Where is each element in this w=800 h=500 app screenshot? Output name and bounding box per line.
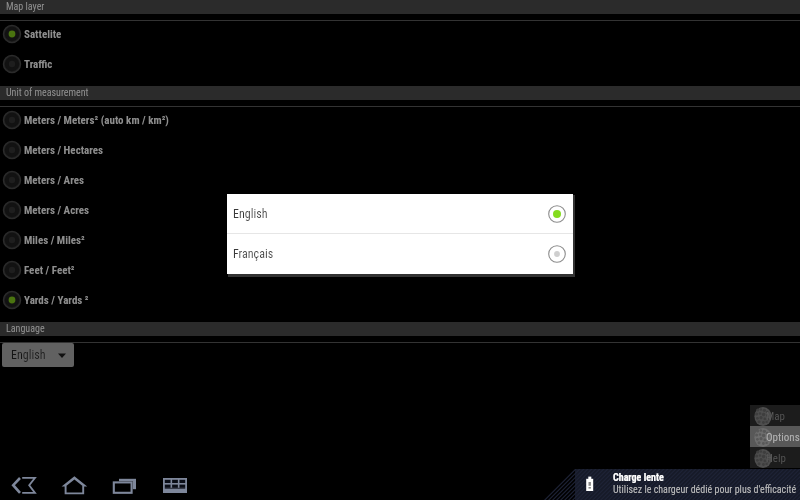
button[interactable]: Sattelite xyxy=(0,19,800,49)
button[interactable]: Meters / Hectares xyxy=(0,135,800,165)
staticText: Miles / Miles² xyxy=(24,234,85,247)
button[interactable]: Home xyxy=(50,470,100,500)
staticText: Charge lente xyxy=(613,472,664,484)
button[interactable]: Options xyxy=(750,426,800,447)
staticText: English xyxy=(233,207,540,221)
staticText: Language xyxy=(6,323,45,335)
staticText: Map xyxy=(766,410,786,423)
button[interactable]: Charge lente xyxy=(575,469,800,500)
button[interactable]: Traffic xyxy=(0,49,800,79)
staticText: Meters / Meters² (auto km / km²) xyxy=(24,114,169,127)
button[interactable]: Yards / Yards ² xyxy=(0,285,800,315)
button[interactable]: Keyboard xyxy=(150,470,200,500)
button[interactable]: Français xyxy=(227,234,573,273)
button[interactable]: Help xyxy=(750,447,800,468)
staticText: Feet / Feet² xyxy=(24,264,75,277)
button[interactable]: English xyxy=(227,194,573,233)
staticText: Map layer xyxy=(6,1,45,13)
button[interactable]: Feet / Feet² xyxy=(0,255,800,285)
button[interactable]: Meters / Meters² (auto km / km²) xyxy=(0,105,800,135)
staticText: Français xyxy=(233,247,540,261)
staticText: Help xyxy=(766,452,786,465)
button[interactable]: Map xyxy=(750,405,800,426)
staticText: Meters / Ares xyxy=(24,174,84,187)
staticText: Options xyxy=(766,431,800,444)
staticText: Sattelite xyxy=(24,28,62,41)
button[interactable]: Recents xyxy=(100,470,150,500)
staticText: Utilisez le chargeur dédié pour plus d'e… xyxy=(613,484,797,496)
staticText: Meters / Acres xyxy=(24,204,90,217)
button[interactable]: Miles / Miles² xyxy=(0,225,800,255)
button[interactable]: Back xyxy=(0,470,50,500)
button[interactable]: English xyxy=(2,343,74,367)
staticText: Yards / Yards ² xyxy=(24,294,89,307)
staticText: Unit of measurement xyxy=(6,87,89,99)
button[interactable]: Meters / Ares xyxy=(0,165,800,195)
staticText: English xyxy=(11,348,46,362)
button[interactable]: Meters / Acres xyxy=(0,195,800,225)
staticText: Meters / Hectares xyxy=(24,144,104,157)
staticText: Traffic xyxy=(24,58,53,71)
